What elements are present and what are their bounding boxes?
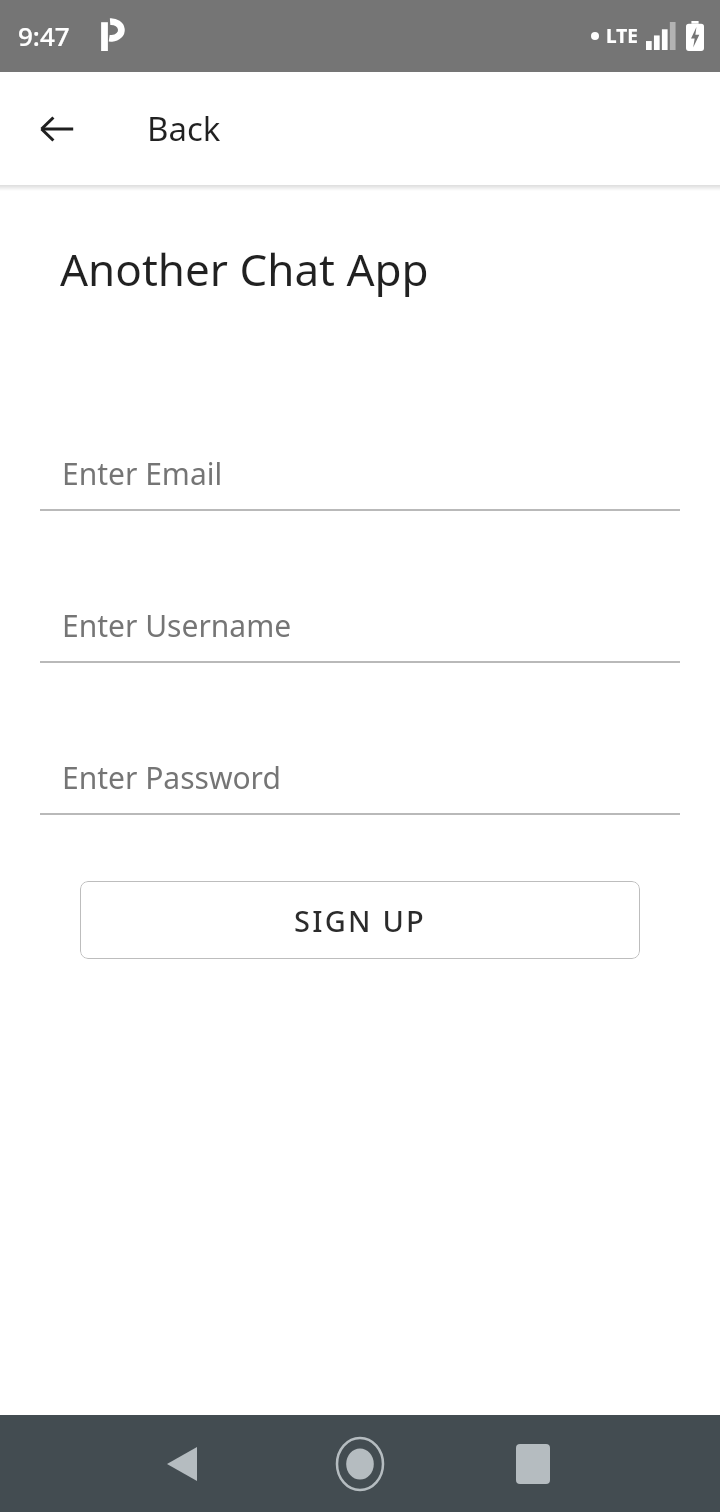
button[interactable]: Enter Username [40,589,680,663]
staticText: Enter Email [62,453,223,494]
staticText: Another Chat App [60,239,429,299]
staticText: Enter Username [62,605,292,646]
staticText: Back [147,106,221,151]
button[interactable]: Back [24,96,90,162]
button[interactable]: Back [142,1424,222,1504]
staticText: SIGN UP [294,901,426,940]
button[interactable]: SIGN UP [80,881,640,959]
button[interactable]: Enter Password [40,741,680,815]
staticText: Enter Password [62,757,281,798]
button[interactable]: Enter Email [40,437,680,511]
staticText: LTE [606,23,638,49]
button[interactable]: Home [320,1424,400,1504]
button[interactable]: Recent apps [493,1424,573,1504]
staticText: 9:47 [18,18,70,53]
